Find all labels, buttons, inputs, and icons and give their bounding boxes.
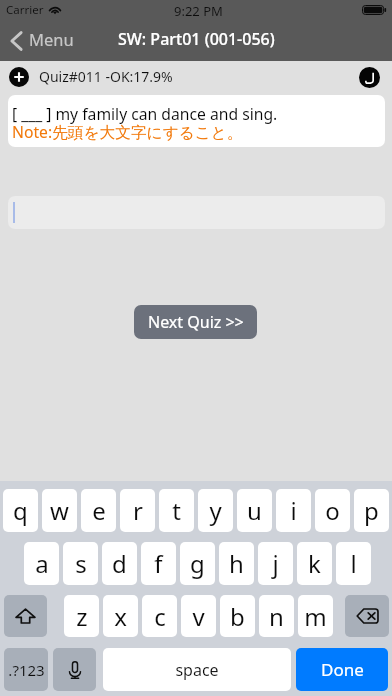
button[interactable]: r	[120, 489, 155, 532]
button[interactable]: Next Quiz >>	[134, 305, 257, 339]
button[interactable]: Done	[296, 648, 388, 691]
staticText: Carrier	[6, 2, 44, 18]
staticText: a	[35, 547, 49, 580]
button[interactable]: z	[64, 595, 99, 637]
staticText: l	[350, 547, 357, 580]
button[interactable]: Dictation	[53, 648, 96, 691]
staticText: .?123	[8, 660, 45, 680]
button[interactable]: n	[259, 595, 294, 637]
button[interactable]: Shift	[4, 595, 47, 637]
button[interactable]: c	[142, 595, 177, 637]
button[interactable]: d	[102, 542, 137, 585]
staticText: d	[112, 547, 127, 580]
staticText: y	[209, 494, 222, 527]
staticText: p	[364, 494, 379, 527]
staticText: space	[175, 659, 219, 681]
staticText: Done	[321, 658, 364, 681]
button[interactable]: u	[237, 489, 272, 532]
button[interactable]: .?123	[4, 648, 48, 691]
staticText: [ ___ ] my family can dance and sing.	[12, 103, 278, 124]
staticText: Menu	[29, 28, 74, 50]
button[interactable]: l	[336, 542, 371, 585]
button[interactable]: i	[276, 489, 311, 532]
button[interactable]: x	[103, 595, 138, 637]
button[interactable]: o	[315, 489, 350, 532]
staticText: o	[325, 494, 340, 527]
button[interactable]: Menu	[0, 20, 86, 61]
staticText: Quiz#011 -OK:17.9%	[39, 67, 173, 86]
button[interactable]	[8, 196, 385, 229]
button[interactable]: Backspace	[345, 595, 389, 637]
button[interactable]: Profile	[359, 67, 380, 88]
staticText: g	[190, 547, 205, 580]
button[interactable]: q	[3, 489, 38, 532]
button[interactable]: y	[198, 489, 233, 532]
button[interactable]: b	[220, 595, 255, 637]
staticText: Note:先頭を大文字にすること。	[12, 121, 243, 142]
staticText: x	[114, 600, 127, 633]
staticText: z	[76, 600, 88, 633]
button[interactable]: g	[180, 542, 215, 585]
staticText: h	[229, 547, 244, 580]
staticText: f	[154, 547, 163, 580]
staticText: b	[230, 600, 245, 633]
button[interactable]: p	[354, 489, 389, 532]
button[interactable]: e	[81, 489, 116, 532]
button[interactable]: s	[63, 542, 98, 585]
staticText: i	[290, 494, 297, 527]
staticText: Next Quiz >>	[148, 311, 244, 333]
button[interactable]: w	[42, 489, 77, 532]
staticText: j	[272, 547, 279, 580]
staticText: w	[50, 494, 69, 527]
staticText: v	[192, 600, 205, 633]
staticText: m	[304, 600, 327, 633]
staticText: s	[75, 547, 87, 580]
staticText: n	[269, 600, 284, 633]
button[interactable]: m	[298, 595, 333, 637]
button[interactable]: t	[159, 489, 194, 532]
button[interactable]: f	[141, 542, 176, 585]
button[interactable]: h	[219, 542, 254, 585]
button[interactable]: Add	[9, 67, 29, 87]
button[interactable]: k	[297, 542, 332, 585]
button[interactable]: a	[24, 542, 59, 585]
staticText: u	[247, 494, 262, 527]
staticText: 9:22 PM	[174, 2, 223, 20]
staticText: k	[308, 547, 321, 580]
button[interactable]: space	[103, 648, 291, 691]
staticText: r	[133, 494, 143, 527]
staticText: SW: Part01 (001-056)	[118, 28, 275, 50]
staticText: t	[172, 494, 181, 527]
staticText: q	[13, 494, 28, 527]
button[interactable]: v	[181, 595, 216, 637]
button[interactable]: j	[258, 542, 293, 585]
staticText: c	[154, 600, 166, 633]
staticText: e	[92, 494, 106, 527]
